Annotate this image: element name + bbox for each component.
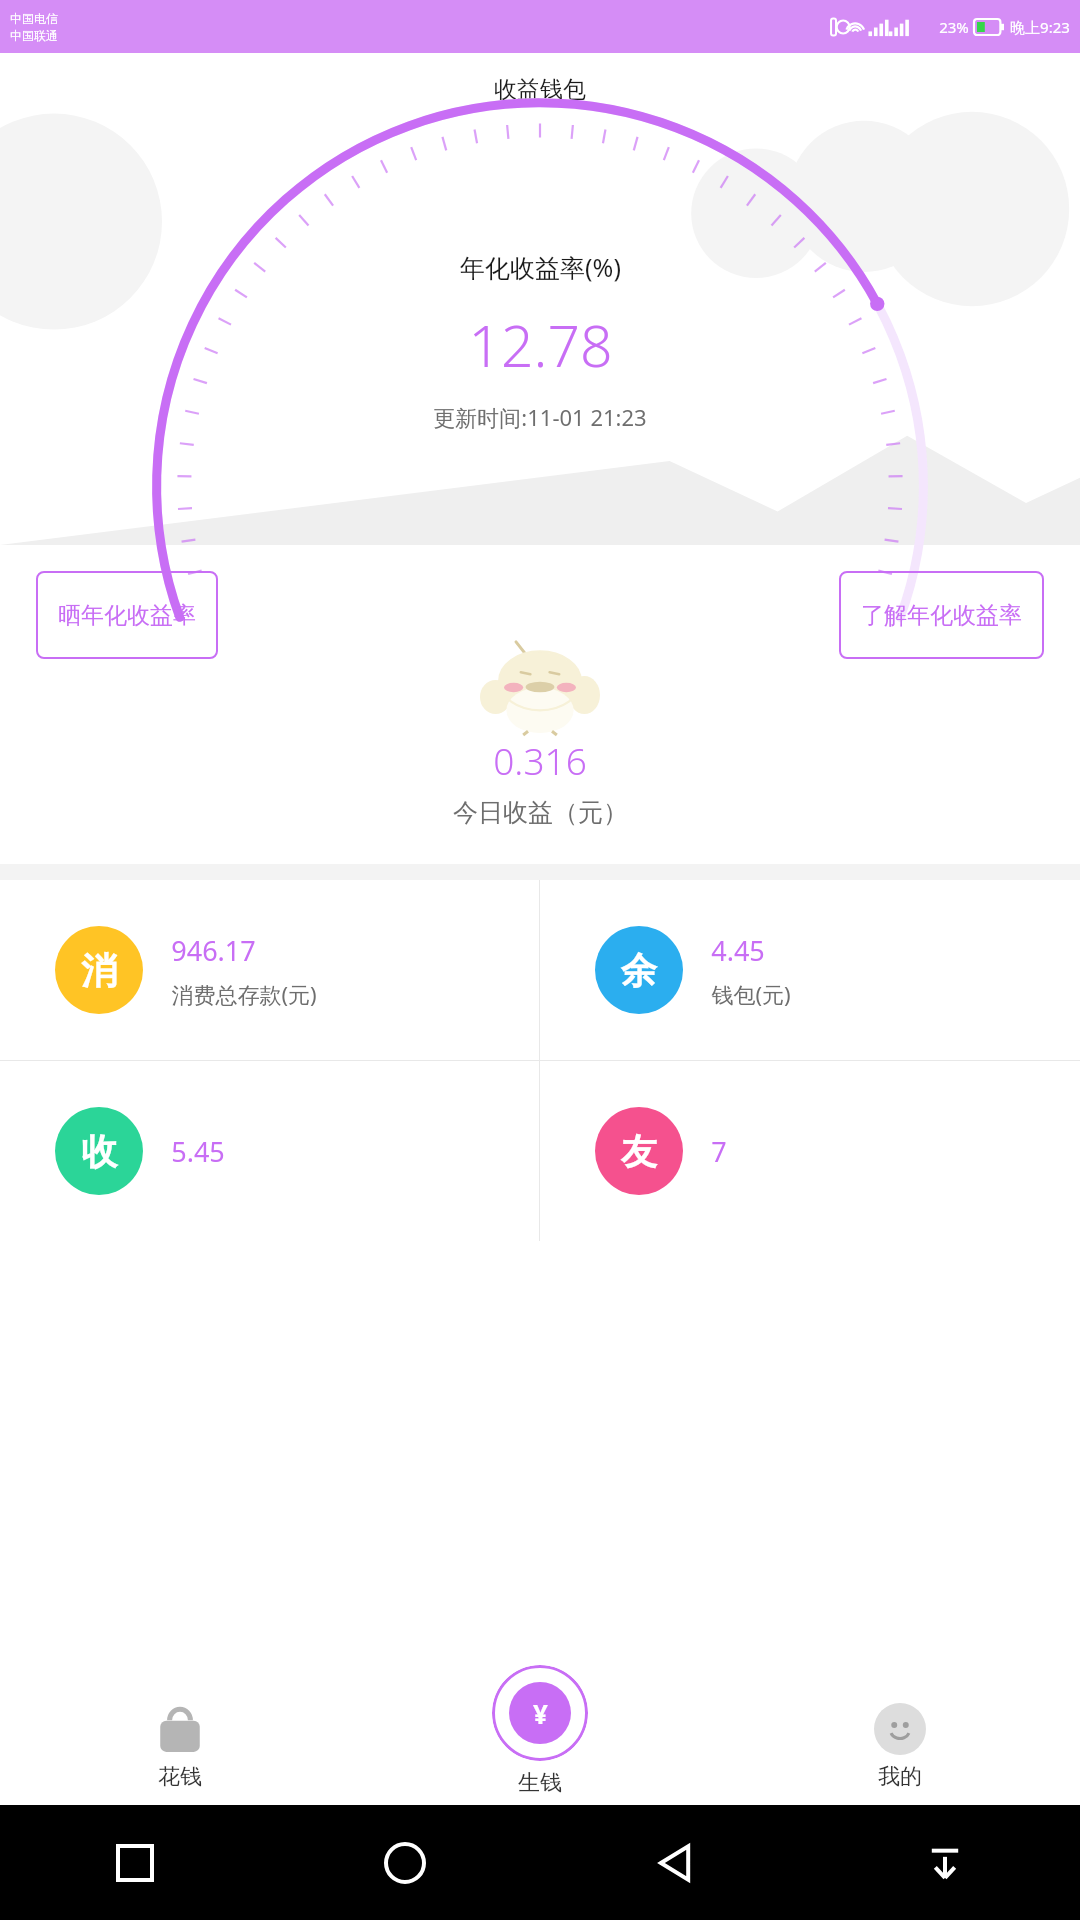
staticText: 今日收益（元） — [453, 797, 628, 828]
button[interactable]: 生钱 — [492, 1665, 588, 1761]
button[interactable]: 友 — [540, 1061, 1080, 1241]
staticText: 我的 — [878, 1763, 922, 1791]
button[interactable]: 我的 — [720, 1703, 1080, 1805]
staticText: 中国联通 — [10, 28, 58, 43]
staticText: 晒年化收益率 — [58, 601, 196, 630]
button[interactable]: 花钱 — [0, 1703, 360, 1805]
button[interactable]: 余 — [540, 880, 1080, 1060]
other: Recents — [114, 1842, 156, 1884]
other: Hide — [923, 1841, 967, 1885]
staticText: 花钱 — [158, 1763, 202, 1791]
staticText: 钱包(元) — [711, 979, 791, 1009]
staticText: 更新时间:11-01 21:23 — [433, 402, 647, 432]
staticText: 23% — [939, 17, 969, 37]
staticText: 消费总存款(元) — [171, 979, 317, 1009]
button[interactable]: 晒年化收益率 — [36, 571, 218, 659]
other: Home — [383, 1841, 427, 1885]
staticText: 收 — [81, 1129, 117, 1174]
staticText: 晚上9:23 — [1010, 17, 1070, 37]
staticText: 友 — [621, 1129, 657, 1174]
staticText: 12.78 — [468, 306, 613, 384]
staticText: 年化收益率(%) — [460, 250, 621, 284]
staticText: 收益钱包 — [494, 75, 586, 104]
staticText: 946.17 — [171, 932, 256, 969]
staticText: 中国电信 — [10, 11, 58, 26]
staticText: 0.316 — [493, 735, 587, 785]
staticText: 了解年化收益率 — [861, 601, 1022, 630]
staticText: 消 — [81, 948, 117, 993]
other: Back — [653, 1841, 697, 1885]
button[interactable]: 收 — [0, 1061, 539, 1241]
staticText: ¥ — [533, 1696, 548, 1731]
staticText: 5.45 — [171, 1133, 225, 1170]
staticText: 4.45 — [711, 932, 765, 969]
staticText: 7 — [711, 1133, 727, 1170]
staticText: 生钱 — [518, 1769, 562, 1797]
button[interactable]: 消 — [0, 880, 539, 1060]
staticText: 余 — [621, 948, 657, 993]
button[interactable]: 了解年化收益率 — [839, 571, 1044, 659]
